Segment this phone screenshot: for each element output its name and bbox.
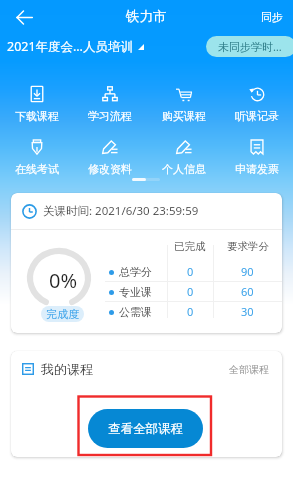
staticText: 修改资料 — [88, 162, 132, 176]
staticText: 专业课 — [119, 285, 152, 299]
staticText: 听课记录 — [235, 109, 279, 123]
button[interactable]: 听课记录 — [220, 86, 293, 123]
staticText: 90 — [241, 264, 254, 279]
staticText: 同步 — [261, 10, 283, 24]
button[interactable]: 修改资料 — [73, 139, 146, 176]
button[interactable]: 同步 — [259, 6, 285, 28]
staticText: 我的课程 — [41, 361, 93, 377]
staticText: 0 — [187, 284, 194, 299]
button[interactable]: 2021年度会…人员培训 — [7, 38, 144, 55]
button[interactable]: 个人信息 — [147, 139, 220, 176]
button[interactable]: 申请发票 — [220, 139, 293, 176]
staticText: 2021年度会…人员培训 — [7, 38, 133, 55]
staticText: 0% — [49, 267, 78, 294]
staticText: 学习流程 — [88, 109, 132, 123]
staticText: 下载课程 — [15, 109, 59, 123]
staticText: 个人信息 — [162, 162, 206, 176]
staticText: 全部课程 — [229, 363, 269, 376]
staticText: 完成度 — [46, 307, 79, 321]
button[interactable]: 全部课程 — [227, 361, 271, 378]
button[interactable]: 下载课程 — [0, 86, 73, 123]
staticText: 未同步学时… — [218, 39, 282, 54]
staticText: 铁力市 — [126, 8, 167, 25]
staticText: 关课时间: 2021/6/30 23:59:59 — [43, 203, 199, 219]
button[interactable]: 在线考试 — [0, 139, 73, 176]
staticText: 30 — [241, 304, 254, 319]
staticText: 总学分 — [119, 265, 152, 279]
staticText: 要求学分 — [227, 240, 269, 253]
staticText: 公需课 — [119, 305, 152, 319]
button[interactable]: 返回 — [10, 3, 38, 31]
staticText: 申请发票 — [235, 162, 279, 176]
staticText: 查看全部课程 — [108, 421, 183, 437]
button[interactable]: 查看全部课程 — [88, 409, 203, 448]
button[interactable]: 未同步学时… — [206, 36, 293, 57]
staticText: 已完成 — [174, 240, 206, 253]
button[interactable]: 购买课程 — [147, 86, 220, 123]
staticText: 60 — [241, 284, 254, 299]
staticText: 0 — [187, 264, 194, 279]
staticText: 0 — [187, 304, 194, 319]
staticText: 在线考试 — [15, 162, 59, 176]
button[interactable]: 学习流程 — [73, 86, 146, 123]
staticText: 购买课程 — [162, 109, 206, 123]
